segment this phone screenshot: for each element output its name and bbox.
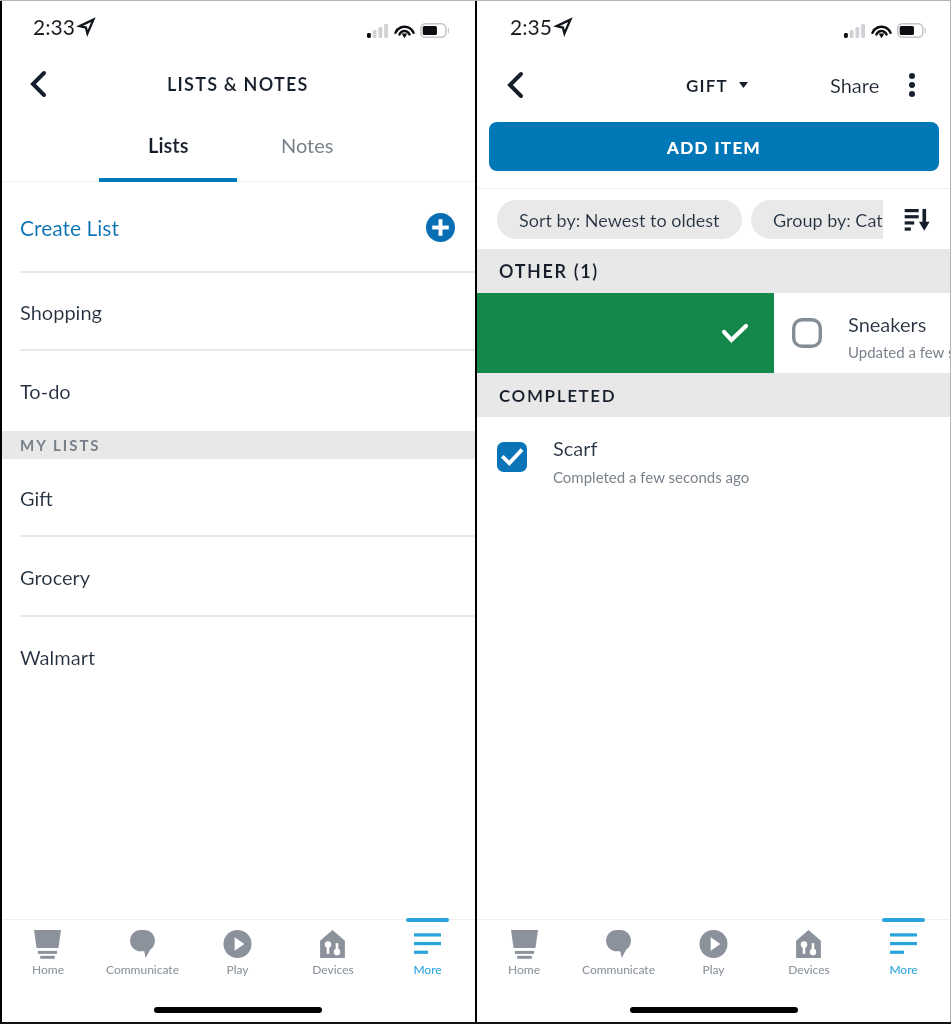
staticText: Grocery: [20, 565, 91, 589]
button[interactable]: Lists: [99, 113, 238, 182]
button[interactable]: Home: [0, 919, 95, 991]
button[interactable]: Group by: Category: [751, 200, 950, 239]
staticText: OTHER (1): [499, 260, 599, 282]
button[interactable]: Complete item: [477, 293, 774, 373]
button[interactable]: Sort: [883, 189, 951, 249]
staticText: Communicate: [106, 962, 179, 976]
button[interactable]: Play: [190, 919, 285, 991]
staticText: Group by: Category: [773, 209, 928, 231]
staticText: GIFT: [686, 75, 729, 95]
staticText: Share: [830, 73, 880, 97]
button[interactable]: Share: [820, 62, 890, 108]
button[interactable]: Devices: [285, 919, 380, 991]
staticText: ADD ITEM: [667, 137, 762, 157]
staticText: 2:35: [510, 14, 552, 39]
button[interactable]: Walmart: [0, 617, 475, 697]
button[interactable]: Devices: [761, 919, 856, 991]
button[interactable]: Shopping: [0, 273, 475, 351]
button[interactable]: Sort by: Newest to oldest: [497, 200, 742, 239]
staticText: Shopping: [20, 300, 102, 324]
staticText: Home: [32, 962, 64, 976]
button[interactable]: Back: [10, 56, 66, 112]
staticText: Completed a few seconds ago: [553, 468, 750, 486]
staticText: LISTS & NOTES: [167, 73, 309, 95]
staticText: Notes: [281, 133, 334, 157]
button[interactable]: Play: [666, 919, 761, 991]
button[interactable]: More: [856, 919, 951, 991]
staticText: Walmart: [20, 645, 96, 669]
staticText: To-do: [20, 379, 71, 403]
staticText: Lists: [148, 133, 189, 157]
staticText: Devices: [788, 962, 830, 976]
button[interactable]: Notes: [238, 113, 377, 182]
staticText: Communicate: [582, 962, 655, 976]
staticText: MY LISTS: [20, 436, 101, 454]
button[interactable]: Sneakers: [774, 293, 951, 373]
button[interactable]: Home: [477, 919, 571, 991]
staticText: Scarf: [553, 436, 598, 460]
staticText: COMPLETED: [499, 385, 617, 405]
staticText: Devices: [312, 962, 354, 976]
button[interactable]: More: [380, 919, 475, 991]
button[interactable]: GIFT: [680, 67, 754, 103]
button[interactable]: Communicate: [95, 919, 190, 991]
button[interactable]: Communicate: [571, 919, 666, 991]
staticText: 2:33: [33, 14, 75, 39]
button[interactable]: Grocery: [0, 537, 475, 617]
button[interactable]: More options: [890, 63, 934, 107]
staticText: Sneakers: [848, 312, 927, 336]
button[interactable]: Create List: [0, 182, 475, 273]
staticText: Play: [226, 962, 249, 976]
staticText: More: [889, 962, 918, 976]
staticText: Gift: [20, 486, 54, 510]
staticText: Play: [702, 962, 725, 976]
staticText: Home: [508, 962, 540, 976]
staticText: Create List: [20, 215, 119, 240]
button[interactable]: To-do: [0, 351, 475, 431]
button[interactable]: Back: [487, 57, 543, 113]
staticText: More: [413, 962, 442, 976]
staticText: Updated a few seconds ago: [848, 343, 951, 361]
button[interactable]: Scarf: [477, 417, 951, 497]
staticText: Sort by: Newest to oldest: [519, 209, 720, 231]
button[interactable]: Gift: [0, 459, 475, 537]
button[interactable]: ADD ITEM: [489, 122, 939, 171]
